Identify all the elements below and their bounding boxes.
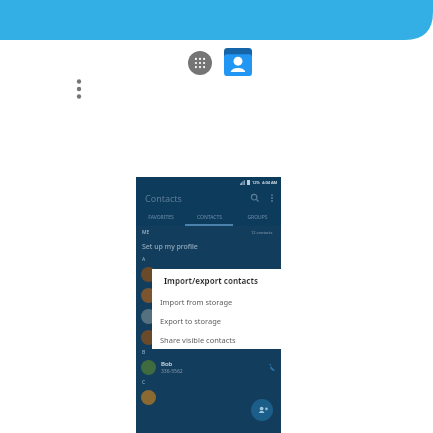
staticText: CONTACTS <box>197 214 222 221</box>
staticText: C <box>142 379 146 386</box>
button[interactable]: Add contact <box>251 399 273 421</box>
button[interactable]: GROUPS <box>233 209 281 226</box>
button[interactable]: Export to storage <box>152 311 282 330</box>
staticText: Contacts <box>145 192 182 204</box>
staticText: A <box>142 256 146 263</box>
staticText: FAVORITES <box>148 214 174 221</box>
button[interactable]: Contacts app <box>224 48 252 76</box>
staticText: Export to storage <box>160 316 222 326</box>
button[interactable] <box>141 306 276 327</box>
staticText: Import from storage <box>160 297 233 307</box>
staticText: Import/export contacts <box>164 275 258 286</box>
staticText: Bob <box>161 360 173 368</box>
button[interactable] <box>141 285 276 306</box>
button[interactable] <box>141 264 276 285</box>
button[interactable]: FAVORITES <box>136 209 185 226</box>
button[interactable]: Share visible contacts <box>152 330 282 349</box>
staticText: ME <box>142 229 150 236</box>
staticText: 222-222-22 <box>161 338 188 345</box>
button[interactable]: Import from storage <box>152 292 282 311</box>
staticText: Share visible contacts <box>160 335 236 345</box>
button[interactable]: Anna Medina <box>141 327 276 348</box>
button[interactable]: All apps <box>188 51 212 75</box>
button[interactable]: CONTACTS <box>185 209 233 226</box>
button[interactable] <box>141 387 276 408</box>
button[interactable]: More options <box>72 78 86 100</box>
button[interactable]: Call Bob <box>267 363 276 372</box>
staticText: Set up my profile <box>142 242 198 252</box>
staticText: GROUPS <box>247 214 268 221</box>
staticText: 336-5562 <box>161 368 183 375</box>
staticText: 12% <box>252 180 260 185</box>
button[interactable]: Set up my profile <box>136 238 281 255</box>
staticText: 4:04 AM <box>262 180 278 185</box>
staticText: 12 contacts <box>251 230 273 235</box>
button[interactable]: Search <box>250 193 260 203</box>
button[interactable]: Bob <box>141 357 276 378</box>
button[interactable]: More options <box>269 192 275 204</box>
staticText: B <box>142 349 146 356</box>
